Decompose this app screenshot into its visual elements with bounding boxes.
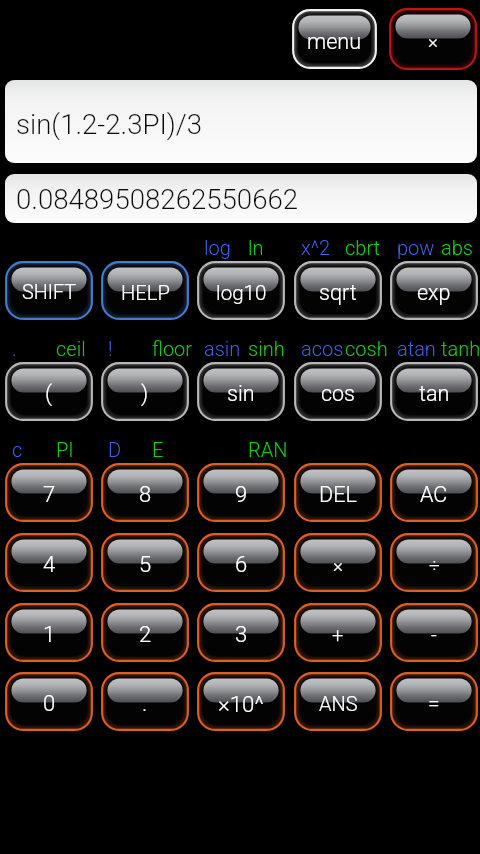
button[interactable]: 2 [101, 603, 189, 662]
staticText: abs [441, 236, 473, 259]
button[interactable]: = [390, 672, 478, 731]
staticText: 4 [43, 552, 56, 578]
button[interactable]: 7 [5, 463, 93, 522]
staticText: 0 [43, 691, 56, 717]
staticText: = [428, 691, 440, 716]
button[interactable]: tan [390, 362, 478, 421]
button[interactable]: Close [389, 8, 477, 70]
staticText: ! [108, 337, 113, 360]
staticText: asin [204, 337, 241, 360]
staticText: E [152, 438, 164, 461]
staticText: . [12, 337, 17, 360]
staticText: floor [152, 337, 193, 360]
button[interactable]: ×10^ [197, 672, 285, 731]
staticText: 1 [43, 622, 56, 648]
staticText: 9 [235, 482, 248, 508]
button[interactable]: ) [101, 362, 189, 421]
button[interactable]: 3 [197, 603, 285, 662]
staticText: 2 [139, 622, 152, 648]
button[interactable]: 4 [5, 533, 93, 592]
staticText: × [428, 30, 438, 52]
staticText: exp [417, 280, 451, 305]
staticText: 6 [235, 552, 248, 578]
staticText: ( [45, 381, 53, 407]
button[interactable]: AC [390, 463, 478, 522]
button[interactable]: HELP [101, 261, 189, 320]
staticText: acos [301, 337, 344, 360]
button[interactable]: - [390, 603, 478, 662]
staticText: HELP [121, 281, 170, 305]
staticText: D [108, 438, 122, 461]
staticText: 5 [139, 552, 152, 578]
button[interactable]: ÷ [390, 533, 478, 592]
button[interactable]: + [294, 603, 382, 662]
staticText: PI [56, 438, 74, 461]
button[interactable]: SHIFT [5, 261, 93, 320]
staticText: tanh [441, 337, 480, 360]
staticText: sin [227, 381, 255, 406]
button[interactable]: 0.08489508262550662 [5, 174, 477, 223]
staticText: HELP [121, 281, 170, 305]
staticText: menu [307, 29, 362, 54]
staticText: log10 [216, 281, 267, 305]
staticText: c [12, 438, 23, 461]
staticText: tan [419, 381, 450, 406]
staticText: SHIFT [22, 281, 77, 304]
button[interactable]: 0 [5, 672, 93, 731]
staticText: 3 [235, 622, 248, 648]
staticText: 0.08489508262550662 [16, 183, 299, 215]
staticText: ) [141, 381, 149, 407]
button[interactable]: 5 [101, 533, 189, 592]
button[interactable]: × [294, 533, 382, 592]
staticText: sinh [248, 337, 285, 360]
button[interactable]: log10 [197, 261, 285, 320]
button[interactable]: menu [292, 9, 377, 69]
staticText: ANS [319, 692, 358, 715]
button[interactable]: . [101, 672, 189, 731]
button[interactable]: 6 [197, 533, 285, 592]
button[interactable]: ANS [294, 672, 382, 731]
staticText: x^2 [301, 236, 331, 259]
button[interactable]: DEL [294, 463, 382, 522]
staticText: AC [420, 482, 448, 507]
button[interactable]: 9 [197, 463, 285, 522]
staticText: ceil [56, 337, 86, 360]
staticText: 8 [139, 482, 152, 508]
staticText: cos [321, 381, 356, 406]
button[interactable]: SHIFT [5, 261, 93, 320]
staticText: . [142, 691, 148, 717]
staticText: ÷ [429, 554, 440, 576]
staticText: ×10^ [218, 691, 264, 717]
staticText: cbrt [345, 236, 381, 259]
staticText: - [431, 623, 437, 646]
staticText: SHIFT [22, 281, 77, 304]
button[interactable]: 8 [101, 463, 189, 522]
button[interactable]: HELP [101, 261, 189, 320]
staticText: × [333, 554, 343, 576]
button[interactable]: sin(1.2-2.3PI)/3 [5, 80, 477, 163]
staticText: cosh [345, 337, 388, 360]
staticText: ln [248, 236, 264, 259]
staticText: pow [397, 236, 435, 259]
button[interactable]: sin [197, 362, 285, 421]
staticText: log [204, 236, 231, 259]
staticText: sqrt [319, 280, 357, 305]
staticText: RAN [248, 438, 288, 461]
button[interactable]: exp [390, 261, 478, 320]
staticText: sin(1.2-2.3PI)/3 [16, 108, 203, 140]
staticText: + [332, 623, 344, 646]
staticText: DEL [319, 482, 357, 507]
staticText: 7 [43, 482, 56, 508]
button[interactable]: sqrt [294, 261, 382, 320]
button[interactable]: cos [294, 362, 382, 421]
button[interactable]: 1 [5, 603, 93, 662]
staticText: atan [397, 337, 436, 360]
button[interactable]: ( [5, 362, 93, 421]
